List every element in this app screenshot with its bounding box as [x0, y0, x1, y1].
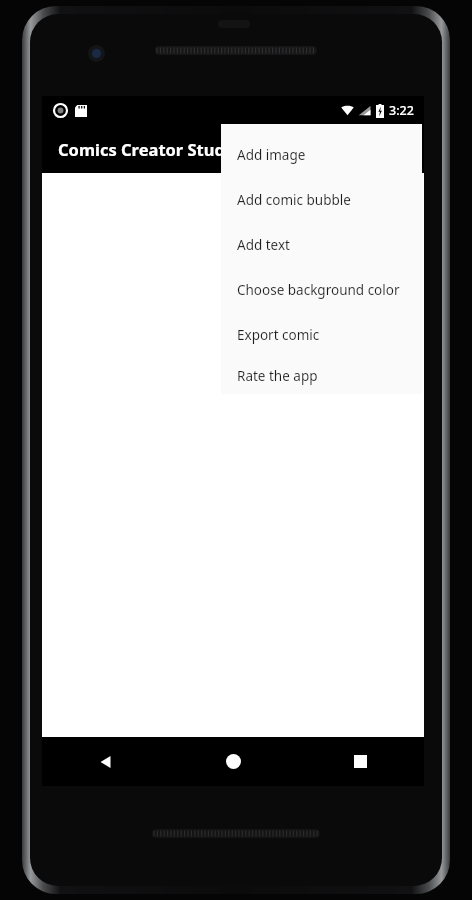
staticText: 3:22: [389, 102, 414, 119]
button[interactable]: Add image: [221, 132, 422, 177]
button[interactable]: Choose background color: [221, 267, 422, 312]
staticText: Comics Creator Studio: [58, 138, 241, 160]
button[interactable]: [42, 173, 424, 737]
staticText: Add comic bubble: [237, 191, 351, 209]
staticText: Rate the app: [237, 367, 318, 385]
button[interactable]: Back: [42, 737, 170, 786]
staticText: Export comic: [237, 326, 320, 344]
button[interactable]: Add text: [221, 222, 422, 267]
button[interactable]: Add comic bubble: [221, 177, 422, 222]
button[interactable]: Home: [170, 737, 297, 786]
button[interactable]: Export comic: [221, 312, 422, 357]
staticText: Add image: [237, 146, 306, 164]
staticText: Add text: [237, 236, 290, 254]
staticText: Choose background color: [237, 281, 400, 299]
button[interactable]: Rate the app: [221, 357, 422, 394]
button[interactable]: Recent apps: [297, 737, 424, 786]
